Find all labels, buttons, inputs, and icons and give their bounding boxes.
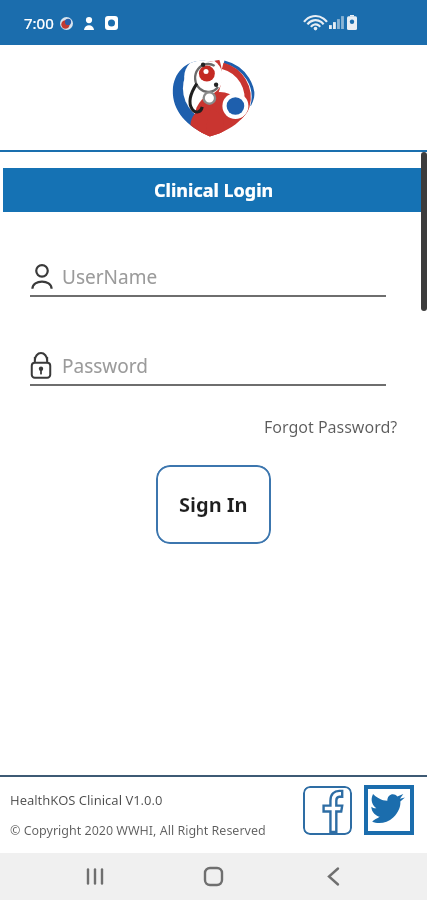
staticText: Password: [62, 353, 148, 379]
button[interactable]: [364, 785, 414, 835]
staticText: Clinical Login: [154, 178, 274, 203]
staticText: UserName: [62, 264, 158, 290]
staticText: Sign In: [179, 491, 248, 518]
button[interactable]: [303, 786, 352, 835]
staticText: © Copyright 2020 WWHI, All Right Reserve…: [10, 822, 266, 839]
staticText: 7:00: [24, 13, 54, 33]
staticText: HealthKOS Clinical V1.0.0: [10, 791, 163, 809]
button[interactable]: Forgot Password?: [264, 416, 398, 438]
button[interactable]: Sign In: [156, 465, 271, 544]
